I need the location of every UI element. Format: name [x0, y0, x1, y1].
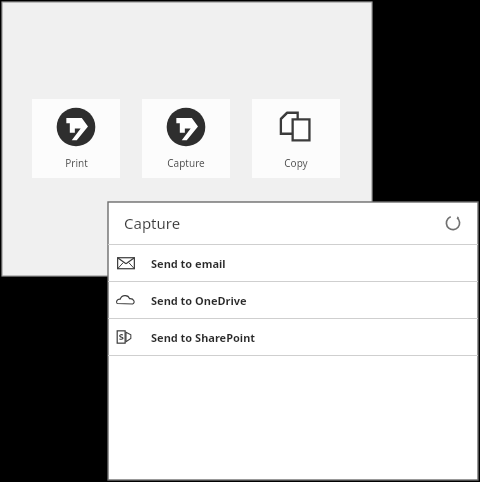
staticText: Print — [65, 156, 88, 170]
button[interactable]: Refresh — [442, 212, 464, 234]
button[interactable]: Send to email — [108, 245, 478, 281]
button[interactable]: Send to SharePoint — [108, 319, 478, 355]
staticText: Send to OneDrive — [151, 293, 247, 308]
button[interactable]: Capture — [108, 202, 478, 244]
button[interactable]: Copy — [252, 99, 340, 178]
staticText: Copy — [284, 156, 308, 170]
staticText: Capture — [124, 213, 181, 233]
staticText: Send to email — [151, 256, 226, 271]
staticText: Send to SharePoint — [151, 330, 256, 345]
button[interactable]: Print — [32, 99, 120, 178]
button[interactable]: Capture — [142, 99, 230, 178]
button[interactable]: Send to OneDrive — [108, 282, 478, 318]
staticText: Capture — [167, 156, 205, 170]
